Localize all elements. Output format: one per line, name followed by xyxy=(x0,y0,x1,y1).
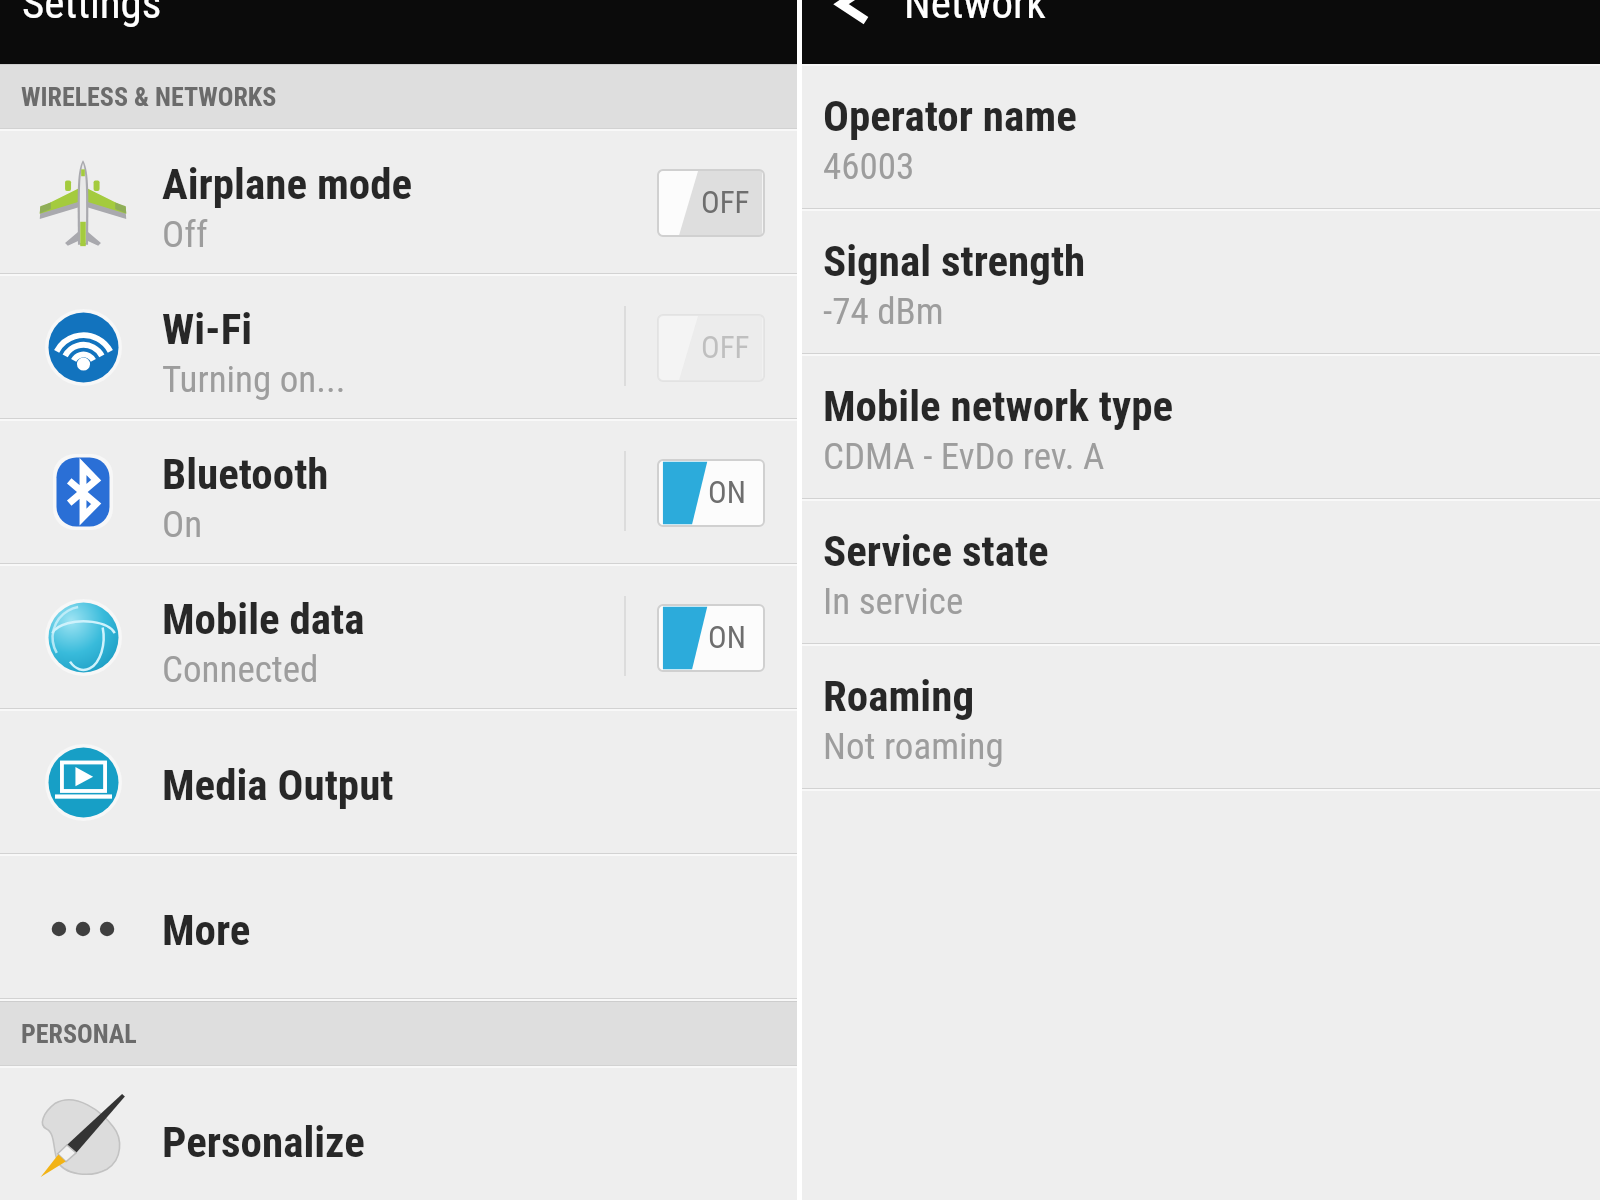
staticText: Settings xyxy=(22,0,162,28)
staticText: More xyxy=(162,905,251,955)
staticText: CDMA - EvDo rev. A xyxy=(823,435,1105,478)
button[interactable]: Operator name xyxy=(802,66,1600,208)
staticText: WIRELESS & NETWORKS xyxy=(21,82,277,112)
staticText: Roaming xyxy=(823,671,975,721)
button[interactable]: Switch on xyxy=(657,604,765,672)
staticText: OFF xyxy=(701,184,750,220)
staticText: Operator name xyxy=(823,91,1077,141)
staticText: 46003 xyxy=(823,145,915,188)
staticText: Service state xyxy=(823,526,1049,576)
staticText: Wi-Fi xyxy=(162,304,253,354)
button[interactable]: Switch on xyxy=(657,459,765,527)
staticText: PERSONAL xyxy=(21,1019,137,1049)
button[interactable]: Roaming xyxy=(802,646,1600,788)
button[interactable]: Switch off xyxy=(657,314,765,382)
button[interactable]: Mobile network type xyxy=(802,356,1600,498)
staticText: Connected xyxy=(162,648,319,691)
button[interactable]: Personalize xyxy=(0,1068,797,1200)
staticText: Off xyxy=(162,213,208,256)
button[interactable]: Bluetooth xyxy=(0,421,797,563)
button[interactable]: Switch off xyxy=(657,169,765,237)
staticText: Turning on... xyxy=(162,358,346,401)
staticText: Network xyxy=(904,0,1046,28)
staticText: -74 dBm xyxy=(823,290,944,333)
staticText: Signal strength xyxy=(823,236,1086,286)
staticText: OFF xyxy=(701,329,750,365)
button[interactable]: Media Output xyxy=(0,711,797,853)
staticText: Media Output xyxy=(162,760,394,810)
button[interactable]: Signal strength xyxy=(802,211,1600,353)
staticText: Bluetooth xyxy=(162,449,329,499)
staticText: Mobile network type xyxy=(823,381,1174,431)
staticText: In service xyxy=(823,580,964,623)
button[interactable]: Back xyxy=(824,0,884,38)
staticText: Mobile data xyxy=(162,594,365,644)
staticText: ON xyxy=(708,474,746,510)
staticText: On xyxy=(162,503,203,546)
staticText: Airplane mode xyxy=(162,159,413,209)
button[interactable]: More xyxy=(0,856,797,998)
button[interactable]: Wi-Fi xyxy=(0,276,797,418)
button[interactable]: Mobile data xyxy=(0,566,797,708)
button[interactable]: Airplane mode xyxy=(0,131,797,273)
staticText: Personalize xyxy=(162,1117,365,1167)
staticText: ON xyxy=(708,619,746,655)
button[interactable]: Service state xyxy=(802,501,1600,643)
staticText: Not roaming xyxy=(823,725,1004,768)
